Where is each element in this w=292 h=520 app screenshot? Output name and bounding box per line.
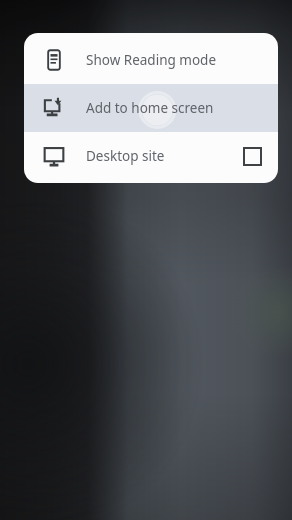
button[interactable]: Desktop site	[24, 132, 278, 180]
staticText: Show Reading mode	[86, 51, 217, 69]
button[interactable]: Add to home screen	[24, 84, 278, 132]
button[interactable]: Show Reading mode	[24, 36, 278, 84]
button[interactable]: Desktop site checkbox	[240, 144, 264, 168]
staticText: Add to home screen	[86, 99, 214, 117]
staticText: Desktop site	[86, 147, 165, 165]
